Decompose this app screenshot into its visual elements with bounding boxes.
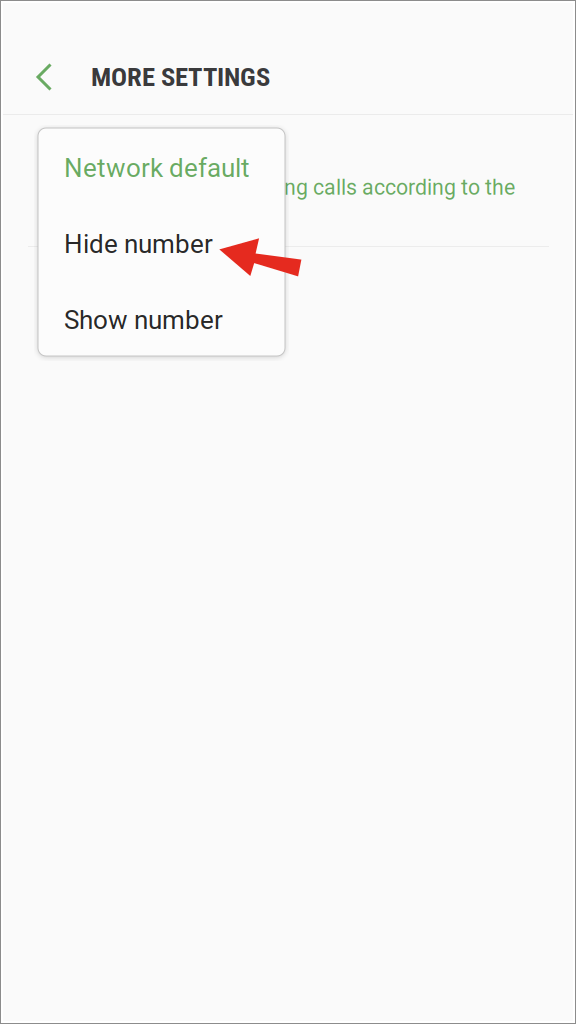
button[interactable]: Hide number [38, 204, 285, 280]
staticText: Show number [64, 305, 223, 335]
button[interactable]: Network default [38, 128, 285, 204]
button[interactable]: Show number [38, 280, 285, 356]
staticText: Caller ID [40, 137, 142, 169]
staticText: Your number appears during calls accordi… [40, 175, 515, 225]
button[interactable]: Caller ID [0, 116, 576, 246]
staticText: Network default [64, 153, 250, 183]
staticText: Hide number [64, 229, 213, 259]
staticText: MORE SETTINGS [91, 61, 270, 93]
button[interactable]: Back [35, 49, 91, 105]
